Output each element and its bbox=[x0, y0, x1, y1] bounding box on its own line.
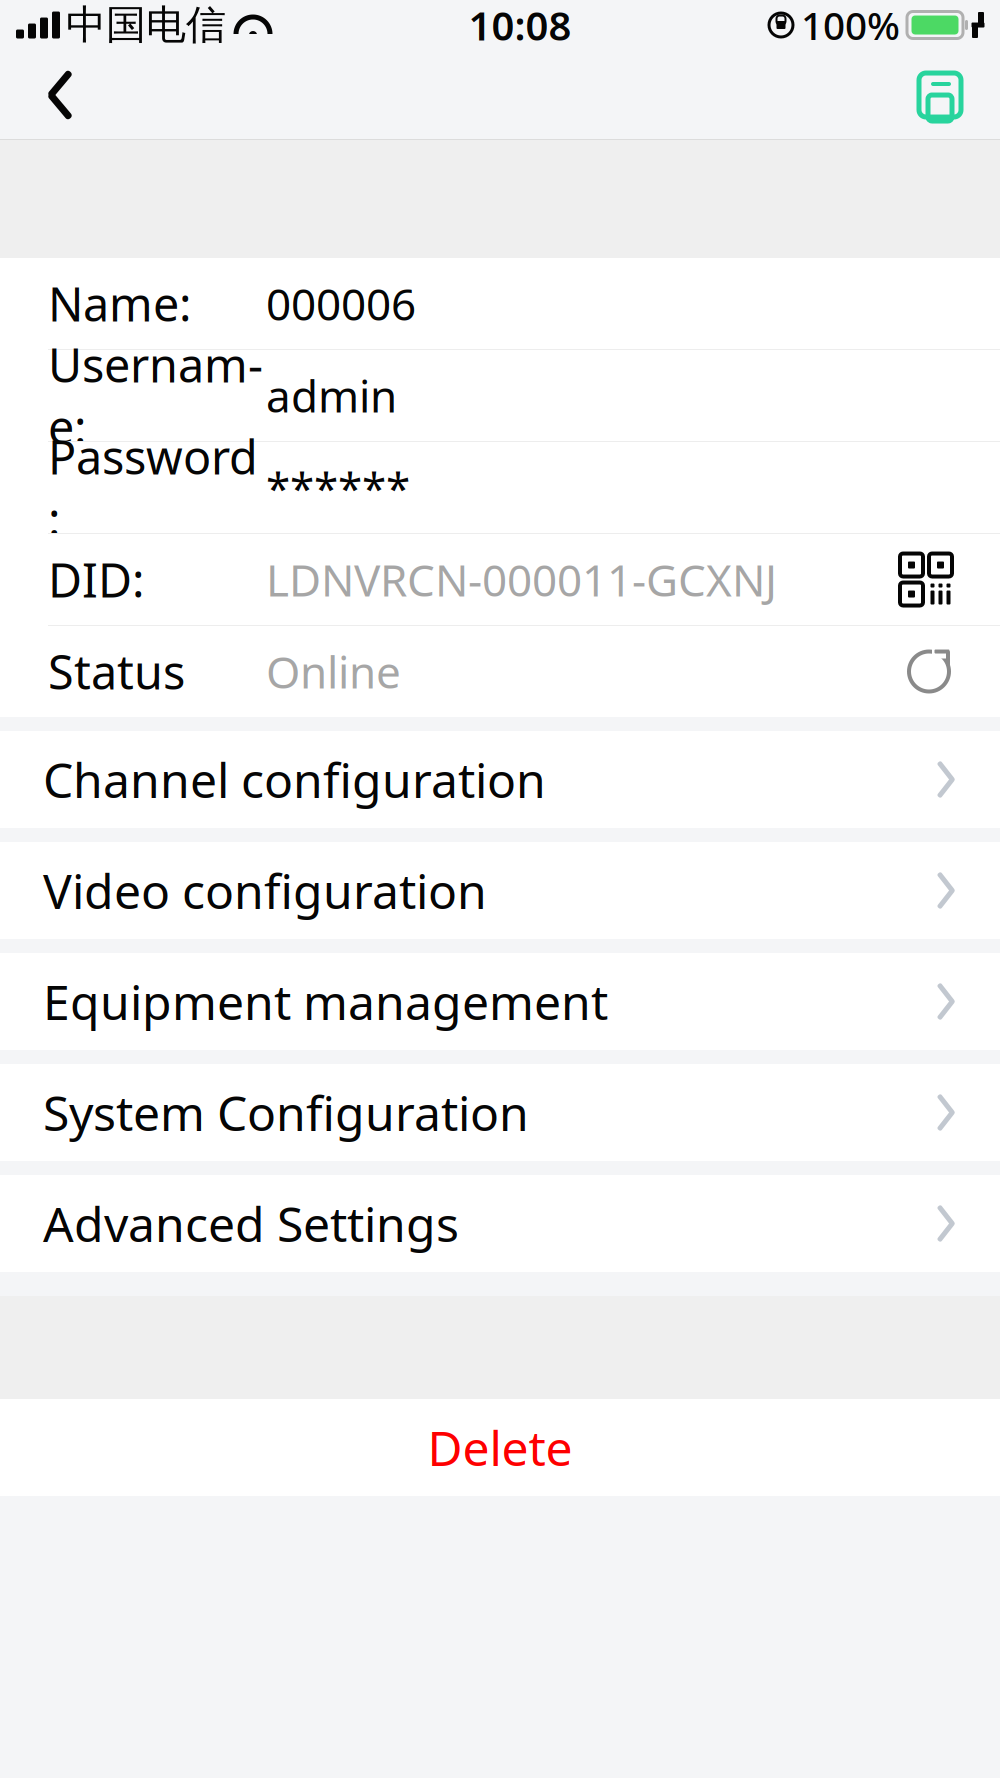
button[interactable]: Scan QR code bbox=[900, 553, 952, 605]
staticText: Username: bbox=[48, 333, 263, 457]
staticText: ****** bbox=[266, 458, 410, 517]
button[interactable]: System Configuration bbox=[0, 1064, 1000, 1161]
staticText: 中国电信 bbox=[66, 0, 226, 49]
staticText: Online bbox=[266, 642, 401, 701]
button[interactable]: Video configuration bbox=[0, 842, 1000, 939]
staticText: Delete bbox=[427, 1416, 572, 1479]
button[interactable]: Back bbox=[14, 50, 106, 140]
staticText: 100% bbox=[801, 0, 900, 51]
staticText: 10:08 bbox=[468, 0, 571, 51]
staticText: System Configuration bbox=[43, 1081, 529, 1144]
staticText: Name: bbox=[48, 272, 192, 334]
button[interactable]: Equipment management bbox=[0, 953, 1000, 1050]
button[interactable]: Delete bbox=[0, 1399, 1000, 1496]
staticText: Video configuration bbox=[43, 859, 487, 922]
staticText: admin bbox=[266, 366, 397, 425]
staticText: Password: bbox=[48, 425, 258, 549]
staticText: Channel configuration bbox=[43, 748, 546, 811]
button[interactable]: Channel configuration bbox=[0, 731, 1000, 828]
button[interactable]: Refresh status bbox=[906, 648, 952, 694]
staticText: Equipment management bbox=[43, 970, 608, 1033]
staticText: DID: bbox=[48, 548, 145, 610]
staticText: 000006 bbox=[266, 274, 416, 333]
staticText: Advanced Settings bbox=[43, 1192, 459, 1255]
staticText: Status bbox=[48, 640, 185, 702]
button[interactable]: Advanced Settings bbox=[0, 1175, 1000, 1272]
button[interactable]: Save bbox=[894, 50, 986, 140]
staticText: LDNVRCN-000011-GCXNJ bbox=[266, 550, 777, 609]
